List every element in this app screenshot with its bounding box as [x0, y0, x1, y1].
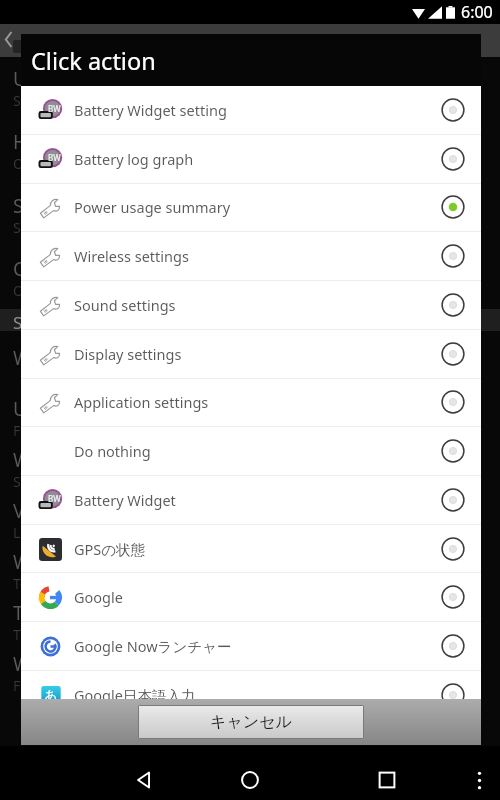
staticText: Battery Widget: [74, 490, 433, 510]
button[interactable]: BW: [21, 476, 481, 524]
staticText: Style 1: [13, 472, 57, 491]
staticText: BW: [48, 103, 61, 114]
staticText: Hide Status bar icon: [13, 129, 193, 155]
button[interactable]: Home: [227, 757, 273, 800]
staticText: Update interval: [13, 396, 151, 422]
staticText: Sound settings: [74, 295, 433, 315]
staticText: Theme: [13, 600, 75, 626]
staticText: Google日本語入力: [74, 685, 433, 699]
staticText: Battery log graph: [74, 149, 433, 169]
staticText: Theme 1: [13, 625, 70, 644]
staticText: Google Nowランチャー: [74, 636, 433, 656]
staticText: Frame: [13, 676, 55, 695]
staticText: GPSの状態: [74, 539, 433, 559]
button[interactable]: Back: [121, 757, 167, 800]
staticText: Show detail: [13, 311, 106, 334]
button[interactable]: Wireless settings: [21, 232, 481, 280]
staticText: Off: [13, 281, 34, 300]
staticText: Off: [13, 154, 34, 173]
staticText: Widget style: [13, 447, 123, 473]
staticText: Show: [13, 218, 49, 237]
button[interactable]: キャンセル: [139, 706, 363, 738]
button[interactable]: Do nothing: [21, 427, 481, 475]
button[interactable]: Google: [21, 573, 481, 621]
staticText: Application settings: [74, 392, 433, 412]
button[interactable]: GPSの状態: [21, 525, 481, 573]
staticText: キャンセル: [210, 712, 292, 732]
staticText: あ: [44, 687, 58, 699]
button[interactable]: Google Nowランチャー: [21, 622, 481, 670]
button[interactable]: Application settings: [21, 378, 481, 426]
staticText: Using double click: [13, 66, 175, 92]
staticText: Version: [13, 498, 80, 524]
staticText: Do nothing: [74, 441, 433, 461]
staticText: Widget frame: [13, 651, 135, 677]
button[interactable]: あ: [21, 671, 481, 699]
button[interactable]: More options: [459, 760, 499, 800]
staticText: Google: [74, 587, 433, 607]
staticText: Widget click action: [13, 345, 180, 371]
button[interactable]: Power usage summary: [21, 183, 481, 231]
staticText: Wireless settings: [74, 246, 433, 266]
button[interactable]: Sound settings: [21, 281, 481, 329]
staticText: 6:00: [461, 1, 493, 23]
staticText: BW: [48, 493, 61, 504]
staticText: Show notification: [13, 193, 168, 219]
staticText: Fast: [13, 421, 40, 440]
button[interactable]: Display settings: [21, 330, 481, 378]
button[interactable]: BW: [21, 86, 481, 134]
button[interactable]: BW: [21, 135, 481, 183]
staticText: Battery Widget setting: [74, 100, 433, 120]
staticText: Widget text: [13, 549, 116, 575]
staticText: Lite version: [13, 523, 89, 542]
staticText: Text 1: [13, 574, 52, 593]
staticText: Display settings: [74, 344, 433, 364]
staticText: BW: [48, 152, 61, 163]
staticText: Click action: [13, 256, 114, 282]
button[interactable]: Recents: [364, 757, 410, 800]
staticText: Power usage summary: [74, 197, 433, 217]
staticText: Switch to double click: [13, 91, 155, 110]
staticText: Click action: [31, 45, 156, 77]
